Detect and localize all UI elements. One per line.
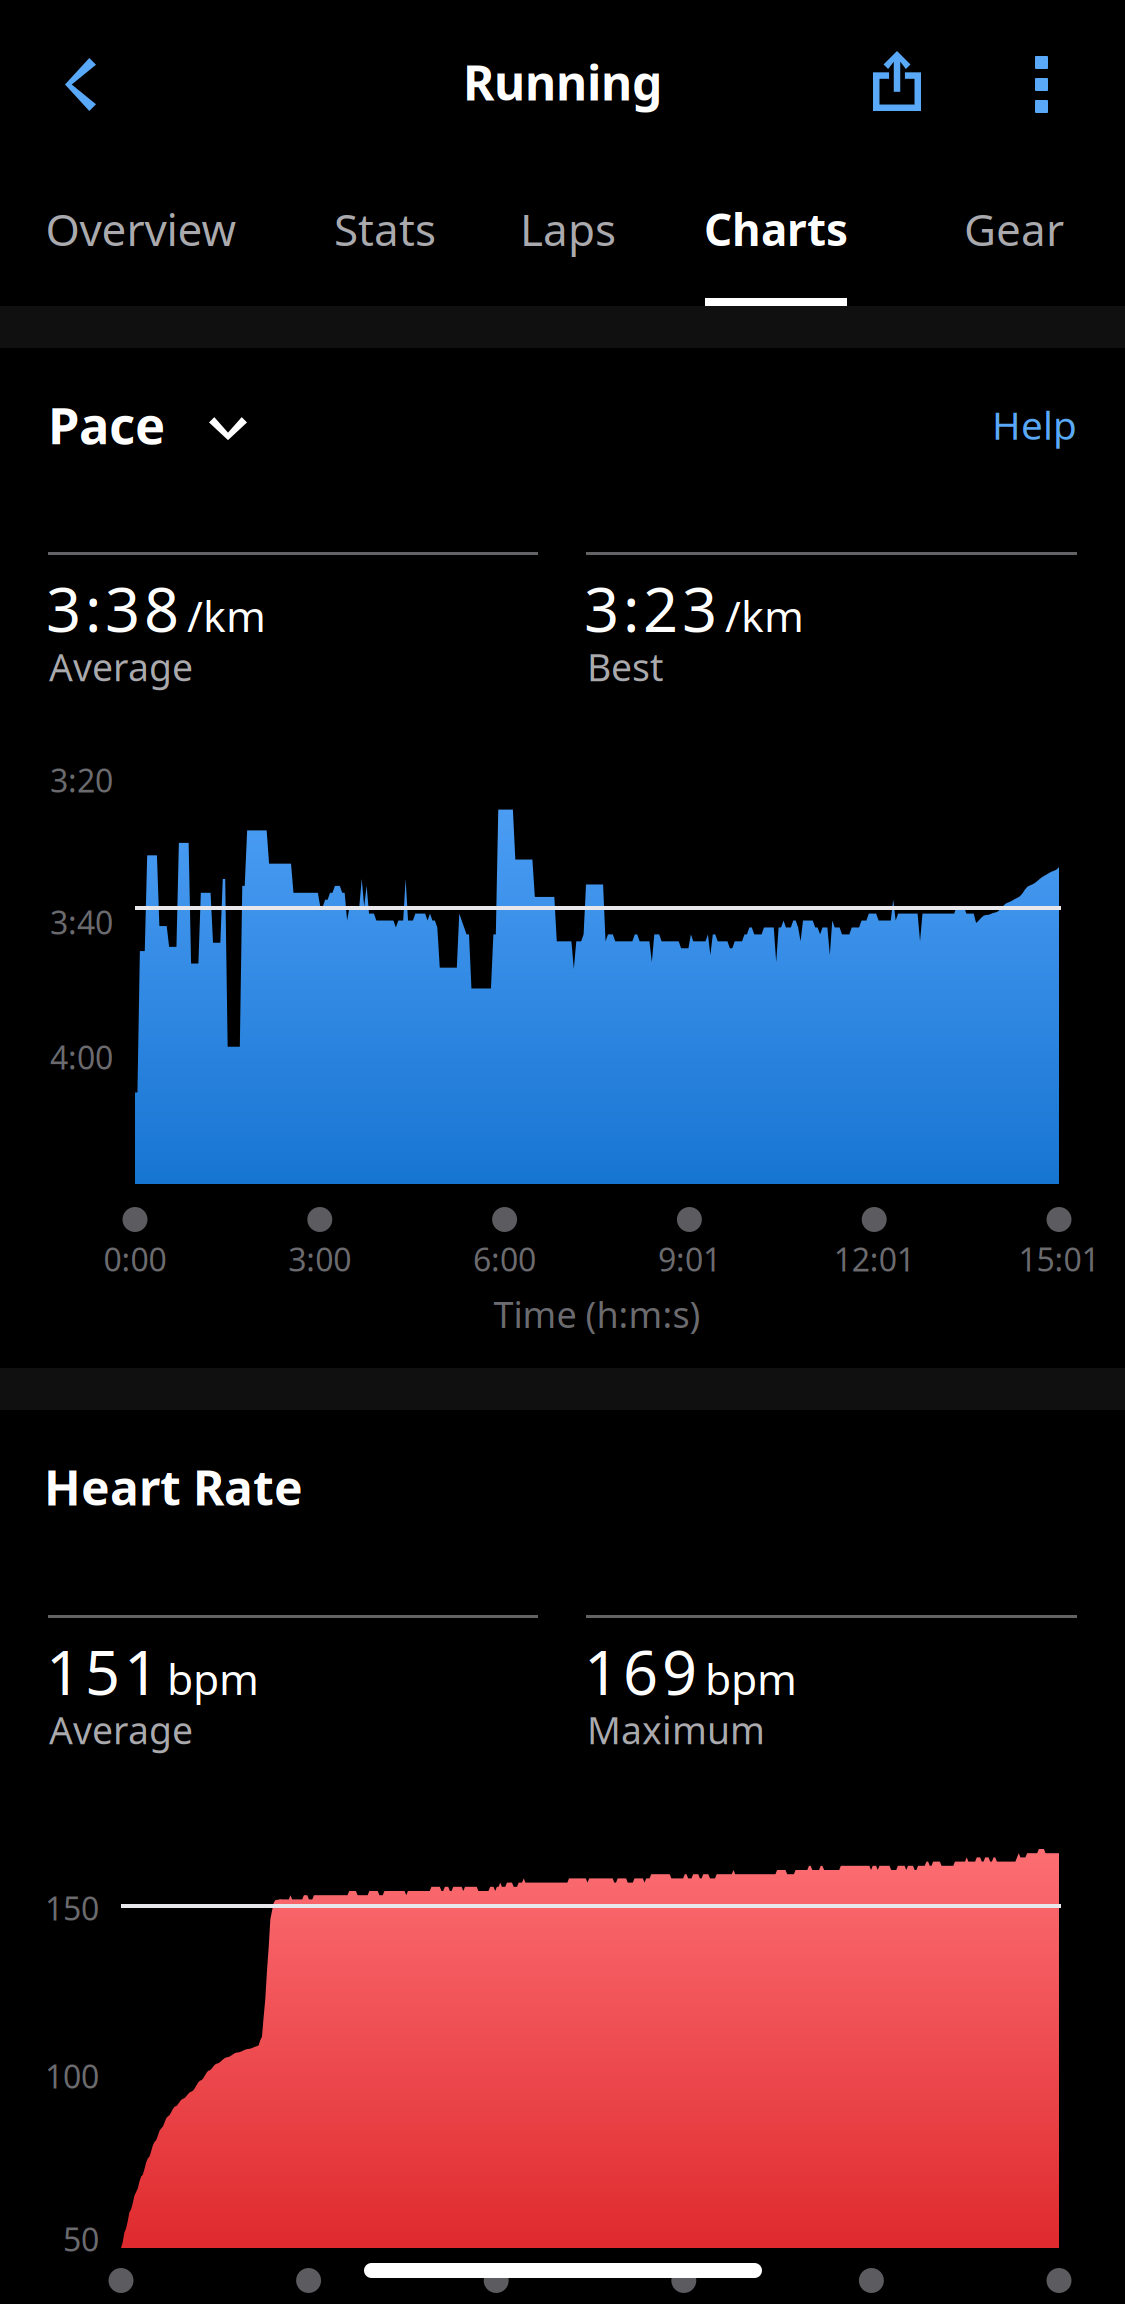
staticText: 3:38 <box>46 568 179 649</box>
staticText: 4:00 <box>50 1036 113 1078</box>
staticText: 50 <box>63 2218 99 2260</box>
staticText: 169 <box>584 1631 697 1712</box>
staticText: Average <box>49 642 193 692</box>
staticText: Heart Rate <box>44 1455 303 1519</box>
staticText: 150 <box>45 1887 99 1929</box>
staticText: /km <box>187 587 266 644</box>
button[interactable]: Charts <box>646 177 906 281</box>
staticText: 3:40 <box>50 901 113 943</box>
staticText: 100 <box>45 2055 99 2097</box>
staticText: Gear <box>964 200 1064 258</box>
staticText: Time (h:m:s) <box>493 1290 700 1338</box>
button[interactable]: Laps <box>438 177 698 281</box>
button[interactable]: Overview <box>11 177 271 281</box>
staticText: bpm <box>167 1650 259 1707</box>
staticText: /km <box>725 587 804 644</box>
staticText: 15:01 <box>1018 1238 1099 1280</box>
staticText: bpm <box>705 1650 797 1707</box>
staticText: 3:23 <box>584 568 717 649</box>
staticText: Maximum <box>587 1705 765 1755</box>
staticText: 3:00 <box>288 1238 351 1280</box>
staticText: Stats <box>334 200 436 258</box>
button[interactable]: Help <box>944 367 1125 482</box>
staticText: Average <box>49 1705 193 1755</box>
staticText: 12:01 <box>834 1238 915 1280</box>
staticText: Laps <box>520 200 616 258</box>
staticText: 0:00 <box>103 1238 166 1280</box>
staticText: 9:01 <box>658 1238 721 1280</box>
button[interactable]: Gear <box>884 177 1125 281</box>
staticText: Overview <box>45 200 236 258</box>
button[interactable]: Pace <box>0 361 295 488</box>
staticText: Best <box>587 642 663 692</box>
staticText: Charts <box>704 200 848 258</box>
staticText: Pace <box>48 391 165 458</box>
button[interactable]: Stats <box>255 177 515 281</box>
button[interactable]: Back <box>25 20 136 149</box>
button[interactable]: Share <box>839 15 955 147</box>
staticText: Running <box>463 50 662 114</box>
staticText: 151 <box>46 1631 159 1712</box>
button[interactable]: More options <box>995 18 1088 151</box>
staticText: Help <box>992 399 1077 450</box>
staticText: 6:00 <box>473 1238 536 1280</box>
staticText: 3:20 <box>50 759 113 801</box>
